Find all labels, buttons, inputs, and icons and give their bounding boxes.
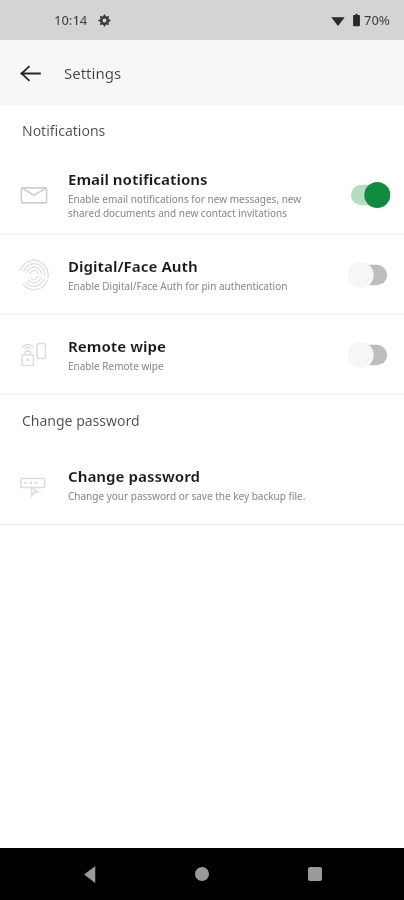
staticText: Email notifications	[68, 169, 208, 189]
staticText: Notifications	[22, 121, 106, 140]
button[interactable]: Change password	[0, 445, 404, 524]
button[interactable]: Off	[334, 330, 404, 380]
staticText: Enable Remote wipe	[68, 359, 164, 373]
button[interactable]: Digital/Face Auth	[0, 235, 404, 314]
button[interactable]: Email notifications	[0, 155, 404, 234]
button[interactable]: Remote wipe	[0, 315, 404, 394]
staticText: 70%	[364, 11, 390, 29]
staticText: Settings	[64, 63, 122, 83]
staticText: Enable email notifications for new messa…	[68, 192, 302, 220]
staticText: Digital/Face Auth	[68, 256, 198, 276]
button[interactable]: Home	[179, 851, 225, 897]
button[interactable]: Recents	[292, 851, 338, 897]
staticText: Change password	[22, 411, 140, 430]
staticText: Enable Digital/Face Auth for pin authent…	[68, 279, 288, 293]
staticText: Remote wipe	[68, 336, 166, 356]
button[interactable]: Back	[8, 51, 52, 95]
button[interactable]: Off	[334, 250, 404, 300]
staticText: Change your password or save the key bac…	[68, 489, 306, 503]
staticText: 10:14	[54, 11, 88, 29]
button[interactable]: On	[334, 170, 404, 220]
staticText: Change password	[68, 466, 201, 486]
button[interactable]: Back	[67, 851, 113, 897]
